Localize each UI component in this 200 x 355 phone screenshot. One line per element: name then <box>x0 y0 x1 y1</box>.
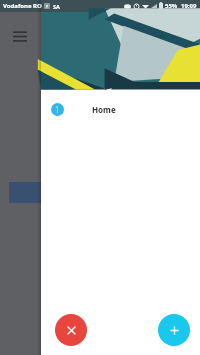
staticText: 55% <box>165 2 178 10</box>
staticText: Vodafone RO <box>3 2 42 10</box>
button[interactable]: Close <box>55 314 87 346</box>
button[interactable]: Open navigation drawer <box>6 22 34 50</box>
staticText: Home <box>92 104 116 115</box>
button[interactable]: Add <box>158 314 190 346</box>
staticText: 19:09 <box>181 2 197 10</box>
button[interactable]: 1 <box>41 96 200 122</box>
button[interactable] <box>41 12 200 88</box>
staticText: SA <box>53 3 60 10</box>
staticText: 1 <box>55 104 60 115</box>
staticText: ? <box>46 4 48 9</box>
